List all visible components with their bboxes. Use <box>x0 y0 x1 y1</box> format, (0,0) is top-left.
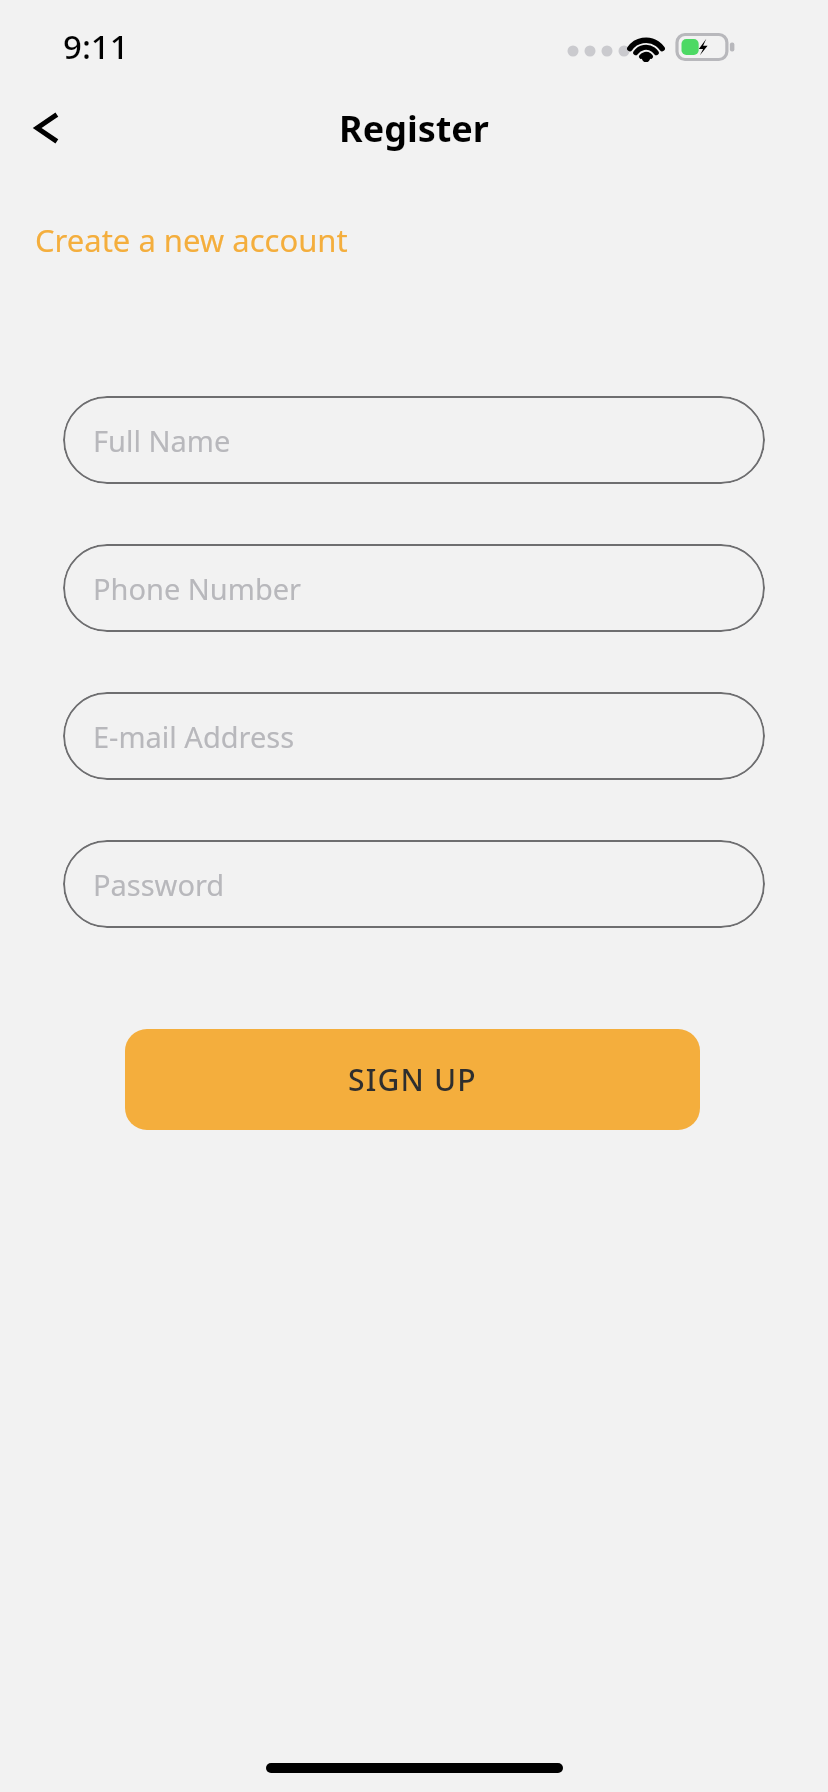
staticText: Password <box>93 865 225 904</box>
staticText: Phone Number <box>93 569 302 608</box>
staticText: Register <box>339 104 489 153</box>
staticText: Create a new account <box>35 219 348 261</box>
button[interactable]: Full Name <box>63 396 765 484</box>
button[interactable]: SIGN UP <box>125 1029 700 1130</box>
staticText: Full Name <box>93 421 231 460</box>
staticText: 9:11 <box>63 24 129 69</box>
button[interactable]: Phone Number <box>63 544 765 632</box>
button[interactable]: Back <box>14 98 74 158</box>
staticText: SIGN UP <box>348 1059 477 1100</box>
staticText: E-mail Address <box>93 717 295 756</box>
button[interactable]: E-mail Address <box>63 692 765 780</box>
button[interactable]: Password <box>63 840 765 928</box>
